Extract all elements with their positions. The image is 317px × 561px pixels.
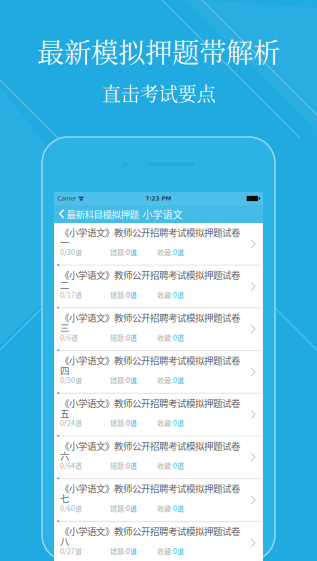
staticText: 五 <box>60 406 69 420</box>
staticText: 最新科目模拟押题 <box>66 207 138 221</box>
button[interactable]: 最新科目模拟押题 <box>54 205 138 223</box>
staticText: 《小学语文》教师公开招聘考试模拟押题试卷 <box>60 353 240 367</box>
staticText: 0道 <box>126 247 137 257</box>
staticText: 收藏: <box>157 375 173 385</box>
staticText: 错题: <box>110 247 126 257</box>
staticText: 收藏: <box>157 247 173 257</box>
button[interactable]: 《小学语文》教师公开招聘考试模拟押题试卷 <box>54 223 263 265</box>
staticText: 一 <box>60 235 69 249</box>
staticText: 0道 <box>173 375 184 385</box>
staticText: 0道 <box>173 332 184 342</box>
staticText: 最新模拟押题带解析 <box>37 31 280 71</box>
staticText: 错题: <box>110 546 126 556</box>
staticText: 0道 <box>173 290 184 300</box>
staticText: 0/27道 <box>60 546 82 556</box>
staticText: 错题: <box>110 332 126 342</box>
staticText: 0道 <box>173 418 184 428</box>
staticText: 《小学语文》教师公开招聘考试模拟押题试卷 <box>60 481 240 495</box>
staticText: 错题: <box>110 460 126 470</box>
staticText: 7:23 PM <box>145 195 171 202</box>
staticText: 收藏: <box>157 290 173 300</box>
staticText: 0道 <box>173 460 184 470</box>
staticText: 0道 <box>126 546 137 556</box>
staticText: 0道 <box>126 503 137 513</box>
staticText: 二 <box>60 278 69 291</box>
button[interactable]: 《小学语文》教师公开招聘考试模拟押题试卷 <box>54 436 263 478</box>
staticText: 《小学语文》教师公开招聘考试模拟押题试卷 <box>60 310 240 324</box>
staticText: 0/6道 <box>60 332 78 342</box>
staticText: 0道 <box>126 460 137 470</box>
staticText: 《小学语文》教师公开招聘考试模拟押题试卷 <box>60 439 240 452</box>
button[interactable]: 《小学语文》教师公开招聘考试模拟押题试卷 <box>54 522 263 561</box>
staticText: 0/17道 <box>60 290 82 300</box>
staticText: 错题: <box>110 418 126 428</box>
staticText: 0道 <box>173 503 184 513</box>
staticText: 0道 <box>126 375 137 385</box>
staticText: 《小学语文》教师公开招聘考试模拟押题试卷 <box>60 396 240 410</box>
staticText: 收藏: <box>157 460 173 470</box>
staticText: 0/24道 <box>60 418 82 428</box>
staticText: 0道 <box>126 418 137 428</box>
staticText: 0道 <box>126 290 137 300</box>
staticText: 0道 <box>173 247 184 257</box>
staticText: 收藏: <box>157 332 173 342</box>
staticText: 错题: <box>110 375 126 385</box>
staticText: 直击考试要点 <box>101 79 215 107</box>
staticText: 错题: <box>110 503 126 513</box>
staticText: 小学语文 <box>142 207 182 221</box>
staticText: 0/64道 <box>60 460 82 470</box>
staticText: 八 <box>60 534 69 548</box>
staticText: 错题: <box>110 290 126 300</box>
staticText: 0/30道 <box>60 247 82 257</box>
staticText: 收藏: <box>157 503 173 513</box>
staticText: 六 <box>60 449 69 462</box>
staticText: 《小学语文》教师公开招聘考试模拟押题试卷 <box>60 268 240 281</box>
button[interactable]: 《小学语文》教师公开招聘考试模拟押题试卷 <box>54 479 263 521</box>
staticText: 《小学语文》教师公开招聘考试模拟押题试卷 <box>60 524 240 538</box>
button[interactable]: 《小学语文》教师公开招聘考试模拟押题试卷 <box>54 351 263 393</box>
staticText: 0/50道 <box>60 375 82 385</box>
staticText: 0道 <box>173 546 184 556</box>
staticText: 收藏: <box>157 418 173 428</box>
staticText: 三 <box>60 320 69 334</box>
staticText: 《小学语文》教师公开招聘考试模拟押题试卷 <box>60 225 240 239</box>
staticText: 收藏: <box>157 546 173 556</box>
staticText: 四 <box>60 363 69 377</box>
button[interactable]: 《小学语文》教师公开招聘考试模拟押题试卷 <box>54 266 263 307</box>
staticText: 0道 <box>126 332 137 342</box>
button[interactable]: 《小学语文》教师公开招聘考试模拟押题试卷 <box>54 308 263 350</box>
staticText: Carrier <box>57 195 75 202</box>
staticText: 七 <box>60 491 69 505</box>
button[interactable]: 《小学语文》教师公开招聘考试模拟押题试卷 <box>54 394 263 435</box>
staticText: 0/60道 <box>60 503 82 513</box>
